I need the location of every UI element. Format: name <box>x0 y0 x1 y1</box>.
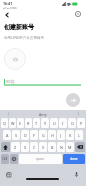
button[interactable]: D <box>21 130 29 140</box>
staticText: C <box>33 145 36 150</box>
staticText: 使用LINE用户名注册账号 <box>4 35 45 40</box>
staticText: H <box>51 133 54 138</box>
button[interactable]: Help <box>72 8 83 19</box>
staticText: Amy <box>39 112 47 117</box>
staticText: I <box>62 121 64 126</box>
staticText: P <box>80 121 83 126</box>
button[interactable]: U <box>50 118 58 128</box>
button[interactable]: Choose profile photo <box>4 48 26 70</box>
staticText: J <box>60 133 62 138</box>
button[interactable]: N <box>57 142 65 152</box>
button[interactable]: B <box>48 142 56 152</box>
button[interactable]: Q <box>1 118 8 128</box>
button[interactable]: S <box>12 130 20 140</box>
button[interactable]: Switch keyboard language <box>6 172 12 178</box>
button[interactable]: space <box>19 154 62 164</box>
button[interactable]: T <box>33 118 40 128</box>
button[interactable]: J <box>57 130 65 140</box>
staticText: space <box>36 157 45 161</box>
staticText: V <box>42 145 45 150</box>
button[interactable]: K <box>66 130 74 140</box>
button[interactable]: Next <box>66 93 80 107</box>
staticText: R <box>27 121 30 126</box>
button[interactable]: E <box>17 118 24 128</box>
button[interactable]: X <box>21 142 29 152</box>
staticText: W <box>11 121 15 126</box>
staticText: U <box>53 121 56 126</box>
staticText: 16:41 <box>3 1 13 6</box>
staticText: L <box>78 133 80 138</box>
button[interactable]: H <box>48 130 56 140</box>
staticText: E <box>19 121 22 126</box>
button[interactable]: Emoji <box>10 154 18 164</box>
button[interactable]: F <box>30 130 38 140</box>
staticText: 8月28日周四 <box>3 6 17 9</box>
staticText: done <box>70 157 78 161</box>
button[interactable]: O <box>68 118 76 128</box>
button[interactable]: V <box>39 142 47 152</box>
button[interactable]: done <box>63 154 85 164</box>
button[interactable]: M <box>66 142 74 152</box>
button[interactable]: Y <box>41 118 49 128</box>
staticText: Q <box>3 121 6 126</box>
staticText: F <box>33 133 35 138</box>
button[interactable]: Voice input <box>72 170 81 179</box>
staticText: T <box>35 121 38 126</box>
staticText: N <box>60 145 63 150</box>
staticText: G <box>42 133 45 138</box>
button[interactable]: G <box>39 130 47 140</box>
button[interactable]: Shift <box>1 142 10 152</box>
staticText: X <box>24 145 27 150</box>
button[interactable]: L <box>75 130 83 140</box>
staticText: 昵称 <box>6 79 15 84</box>
button[interactable]: R <box>25 118 32 128</box>
staticText: A <box>6 133 9 138</box>
staticText: 创建新账号 <box>4 23 34 31</box>
button[interactable]: I <box>59 118 67 128</box>
button[interactable]: Z <box>11 142 20 152</box>
staticText: Y <box>44 121 47 126</box>
button[interactable]: P <box>77 118 85 128</box>
staticText: Z <box>14 145 17 150</box>
staticText: B <box>51 145 54 150</box>
staticText: K <box>69 133 72 138</box>
button[interactable]: C <box>30 142 38 152</box>
button[interactable]: W <box>9 118 16 128</box>
staticText: S <box>15 133 18 138</box>
button[interactable]: Numbers and symbols <box>1 154 9 164</box>
staticText: M <box>68 145 72 150</box>
button[interactable]: Back <box>1 9 13 21</box>
staticText: O <box>71 121 74 126</box>
button[interactable]: A <box>3 130 11 140</box>
button[interactable]: Backspace <box>75 142 85 152</box>
staticText: 123 <box>2 157 8 161</box>
staticText: D <box>24 133 27 138</box>
